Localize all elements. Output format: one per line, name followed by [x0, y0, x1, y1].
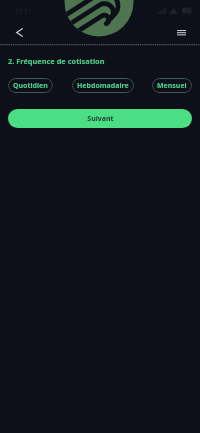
- staticText: 16:31: [15, 7, 31, 15]
- staticText: Suivant: [87, 114, 114, 124]
- button[interactable]: Menu: [171, 22, 191, 42]
- staticText: Hebdomadaire: [77, 81, 129, 91]
- button[interactable]: Quotidien: [8, 78, 53, 93]
- button[interactable]: Back: [9, 22, 30, 43]
- button[interactable]: Hebdomadaire: [72, 78, 134, 93]
- staticText: Quotidien: [13, 81, 48, 91]
- staticText: 2. Fréquence de cotisation: [8, 56, 105, 66]
- staticText: Mensuel: [157, 81, 187, 91]
- button[interactable]: Suivant: [8, 109, 192, 128]
- button[interactable]: Mensuel: [152, 78, 192, 93]
